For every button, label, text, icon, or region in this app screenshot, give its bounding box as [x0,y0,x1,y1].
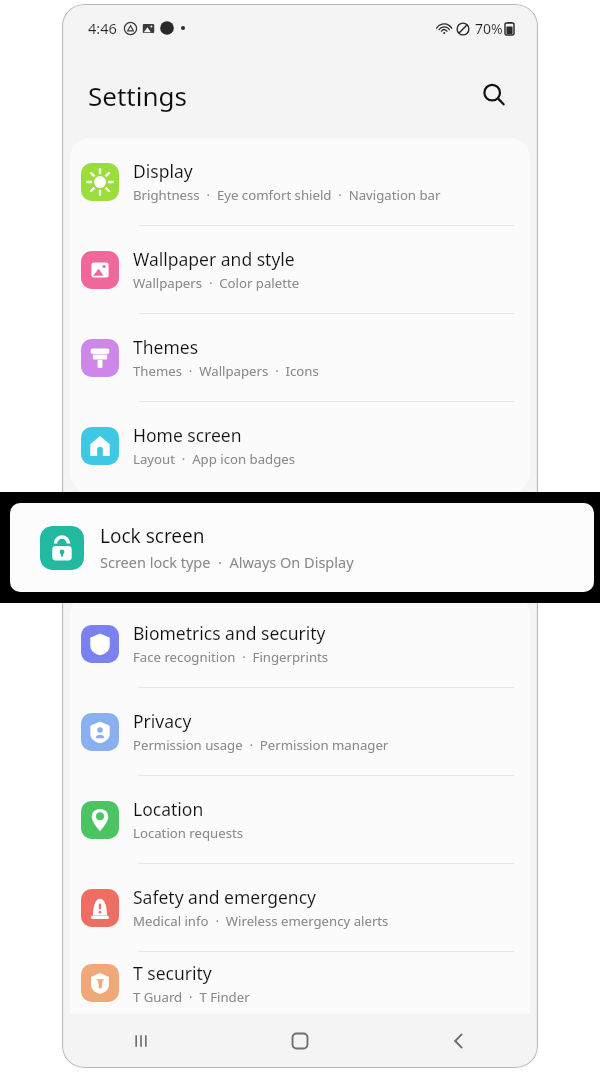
staticText: Safety and emergency [133,885,316,909]
staticText: Biometrics and security [133,621,326,645]
button[interactable]: Lock screen [10,503,594,592]
staticText: Medical info · Wireless emergency alerts [133,912,389,930]
staticText: 4:46 [88,18,117,38]
staticText: Wallpapers · Color palette [133,274,300,292]
staticText: Settings [88,78,187,113]
button[interactable]: Home screen [70,402,530,489]
staticText: Display [133,159,193,183]
staticText: Brightness · Eye comfort shield · Naviga… [133,186,441,204]
button[interactable]: Themes [70,314,530,402]
button[interactable]: Home [220,1014,379,1068]
staticText: 70% [475,19,503,38]
staticText: Location requests [133,824,244,842]
button[interactable]: Safety and emergency [70,864,530,952]
button[interactable]: Privacy [70,688,530,776]
staticText: T Guard · T Finder [133,988,250,1006]
button[interactable]: Biometrics and security [70,600,530,688]
staticText: Themes · Wallpapers · Icons [133,362,319,380]
staticText: Wallpaper and style [133,247,295,271]
staticText: Lock screen [100,523,205,549]
staticText: Face recognition · Fingerprints [133,648,329,666]
staticText: Layout · App icon badges [133,450,296,468]
button[interactable]: Wallpaper and style [70,226,530,314]
staticText: Themes [133,335,199,359]
staticText: Location [133,797,204,821]
staticText: Screen lock type · Always On Display [100,552,354,572]
button[interactable]: Recents [62,1014,220,1068]
button[interactable]: Back [379,1014,538,1068]
button[interactable]: Search [474,75,514,115]
staticText: Permission usage · Permission manager [133,736,389,754]
button[interactable]: T security [70,952,530,1014]
staticText: Home screen [133,423,242,447]
staticText: T security [133,961,212,985]
button[interactable]: Location [70,776,530,864]
button[interactable]: Display [70,138,530,226]
staticText: Privacy [133,709,192,733]
